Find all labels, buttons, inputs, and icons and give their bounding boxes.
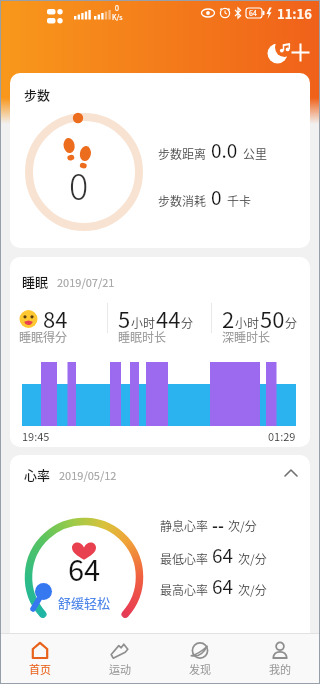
staticText: 0 [115, 3, 119, 13]
staticText: 次/分 [228, 517, 257, 534]
staticText: 0 [69, 158, 89, 210]
staticText: 睡眠得分 [19, 328, 68, 345]
staticText: 64 [212, 541, 234, 569]
staticText: 2019/07/21 [57, 274, 115, 290]
staticText: 64 [249, 8, 257, 18]
staticText: 静息心率 [160, 517, 209, 534]
button[interactable]: 步数 [10, 73, 310, 248]
staticText: 步数消耗 [158, 192, 207, 209]
staticText: 首页 [29, 661, 51, 677]
button[interactable] [284, 469, 298, 477]
staticText: 50 [260, 302, 285, 334]
staticText: 步数 [24, 85, 51, 104]
staticText: 分 [181, 314, 194, 331]
button[interactable]: 运动 [80, 634, 160, 684]
staticText: 01:29 [268, 428, 296, 444]
staticText: 心率 [24, 465, 51, 484]
button[interactable] [290, 42, 311, 63]
staticText: 11:16 [277, 4, 312, 23]
staticText: 最高心率 [160, 581, 209, 598]
staticText: 发现 [189, 661, 211, 677]
staticText: 64 [68, 547, 101, 589]
staticText: 我的 [269, 661, 291, 677]
staticText: 小时 [131, 314, 156, 331]
button[interactable]: 心率 [10, 455, 310, 633]
staticText: 84 [43, 302, 68, 334]
staticText: 运动 [109, 661, 131, 677]
button[interactable] [266, 40, 291, 65]
staticText: 44 [156, 302, 181, 334]
staticText: 睡眠时长 [118, 328, 167, 345]
staticText: 深睡时长 [222, 328, 271, 345]
staticText: 小时 [235, 314, 260, 331]
staticText: 0 [211, 183, 222, 211]
staticText: 最低心率 [160, 550, 209, 567]
staticText: 0.0 [211, 136, 238, 164]
staticText: 千卡 [227, 192, 252, 209]
staticText: 分 [285, 314, 298, 331]
staticText: 步数距离 [158, 145, 207, 162]
staticText: 公里 [243, 145, 268, 162]
staticText: 舒缓轻松 [58, 593, 111, 612]
staticText: -- [212, 513, 224, 536]
staticText: 次/分 [238, 550, 267, 567]
staticText: K/s [112, 12, 123, 22]
staticText: 19:45 [22, 428, 50, 444]
staticText: 次/分 [238, 581, 267, 598]
button[interactable]: 我的 [240, 634, 320, 684]
staticText: 64 [212, 572, 234, 600]
staticText: 2019/05/12 [59, 467, 117, 483]
button[interactable]: 首页 [0, 634, 80, 684]
staticText: 睡眠 [22, 272, 49, 291]
staticText: 2 [222, 302, 235, 334]
staticText: 5 [118, 302, 131, 334]
button[interactable]: 睡眠 [10, 257, 310, 447]
button[interactable]: 发现 [160, 634, 240, 684]
